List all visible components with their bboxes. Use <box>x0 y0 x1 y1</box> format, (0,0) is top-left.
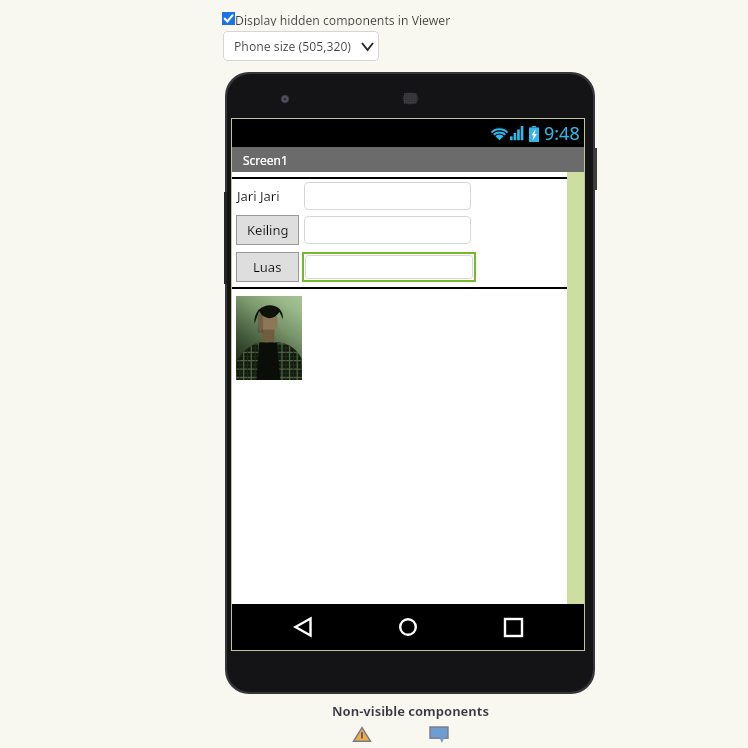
staticText: Phone size (505,320) <box>234 38 352 55</box>
button[interactable]: Keiling <box>236 215 299 245</box>
button[interactable] <box>305 255 473 279</box>
staticText: Display hidden components in Viewer <box>235 12 451 26</box>
button[interactable]: Phone size (505,320) <box>223 31 379 61</box>
staticText: Non-visible components <box>332 702 489 720</box>
button[interactable]: Home <box>386 604 430 650</box>
button[interactable]: Back <box>281 604 325 650</box>
staticText: 9:48 <box>544 121 580 146</box>
staticText: Luas <box>253 258 282 276</box>
button[interactable] <box>304 216 471 244</box>
button[interactable]: Recents <box>491 604 535 650</box>
button[interactable]: Luas <box>236 252 299 282</box>
button[interactable]: Display hidden components in Viewer <box>222 12 451 26</box>
staticText: Keiling <box>247 221 289 239</box>
staticText: Jari Jari <box>237 187 280 205</box>
button[interactable] <box>304 182 471 210</box>
staticText: Screen1 <box>243 152 288 168</box>
